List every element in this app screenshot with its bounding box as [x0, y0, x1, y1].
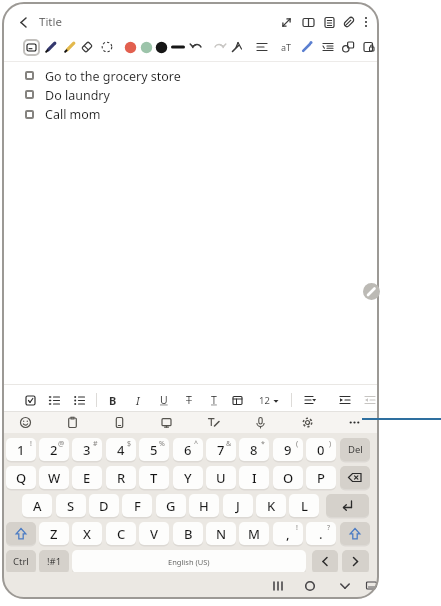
button[interactable] [80, 40, 94, 54]
button[interactable] [44, 40, 58, 54]
button[interactable]: 7 [206, 438, 236, 461]
button[interactable]: S [56, 494, 86, 517]
button[interactable] [66, 416, 79, 429]
button[interactable]: Y [173, 466, 203, 489]
button[interactable] [113, 416, 126, 429]
button[interactable]: B [106, 392, 120, 408]
button[interactable] [25, 90, 34, 99]
button[interactable] [190, 40, 204, 54]
button[interactable]: C [106, 522, 136, 545]
button[interactable] [312, 550, 338, 573]
button[interactable]: Call mom [45, 105, 265, 123]
button[interactable] [255, 40, 269, 54]
button[interactable]: W [39, 466, 69, 489]
button[interactable]: Z [39, 522, 69, 545]
button[interactable] [73, 394, 86, 407]
button[interactable] [303, 579, 317, 593]
button[interactable]: , [273, 522, 303, 545]
button[interactable]: 5 [139, 438, 169, 461]
button[interactable] [301, 416, 314, 429]
button[interactable] [365, 579, 378, 592]
button[interactable] [323, 16, 336, 29]
button[interactable]: X [72, 522, 102, 545]
button[interactable] [303, 393, 317, 407]
button[interactable]: 0 [306, 438, 336, 461]
button[interactable] [342, 15, 356, 29]
button[interactable] [362, 40, 376, 54]
button[interactable] [100, 40, 114, 54]
button[interactable] [18, 17, 29, 28]
button[interactable] [300, 40, 314, 54]
button[interactable] [348, 416, 361, 429]
button[interactable]: B [173, 522, 203, 545]
button[interactable]: E [72, 466, 102, 489]
button[interactable] [363, 283, 380, 300]
button[interactable] [171, 40, 185, 54]
button[interactable] [207, 416, 220, 429]
button[interactable] [25, 110, 34, 119]
button[interactable]: A [22, 494, 52, 517]
button[interactable]: 4 [106, 438, 136, 461]
button[interactable]: R [106, 466, 136, 489]
button[interactable]: 2 [39, 438, 69, 461]
button[interactable]: Ctrl [6, 550, 36, 573]
button[interactable] [140, 41, 153, 54]
button[interactable]: U [157, 392, 171, 408]
button[interactable]: 1 [6, 438, 36, 461]
button[interactable]: O [273, 466, 303, 489]
button[interactable] [19, 416, 32, 429]
button[interactable] [231, 394, 244, 407]
button[interactable]: I [239, 466, 269, 489]
button[interactable]: Q [6, 466, 36, 489]
button[interactable]: N [206, 522, 236, 545]
button[interactable] [230, 40, 244, 54]
button[interactable]: T [139, 466, 169, 489]
button[interactable] [338, 393, 352, 407]
button[interactable] [326, 494, 369, 517]
button[interactable] [273, 398, 279, 404]
button[interactable] [23, 39, 40, 56]
button[interactable]: P [306, 466, 336, 489]
button[interactable]: aT [278, 40, 294, 54]
button[interactable] [340, 466, 370, 489]
button[interactable] [254, 416, 267, 429]
button[interactable]: . [306, 522, 336, 545]
button[interactable]: L [289, 494, 319, 517]
button[interactable]: 8 [239, 438, 269, 461]
button[interactable]: V [139, 522, 169, 545]
button[interactable] [360, 16, 372, 28]
button[interactable]: J [223, 494, 253, 517]
button[interactable]: Del [340, 438, 370, 461]
button[interactable]: H [189, 494, 219, 517]
button[interactable] [124, 41, 137, 54]
button[interactable] [160, 416, 173, 429]
button[interactable]: 3 [72, 438, 102, 461]
button[interactable]: K [256, 494, 286, 517]
button[interactable] [363, 393, 377, 407]
button[interactable] [341, 40, 355, 54]
button[interactable] [6, 522, 36, 545]
button[interactable]: U [206, 466, 236, 489]
button[interactable]: English (US) [72, 550, 306, 573]
button[interactable]: 9 [273, 438, 303, 461]
button[interactable] [271, 579, 285, 593]
button[interactable] [212, 40, 226, 54]
button[interactable]: 12 [254, 392, 274, 408]
button[interactable] [342, 550, 369, 573]
button[interactable]: T [182, 392, 196, 408]
button[interactable] [338, 579, 352, 593]
button[interactable]: T [207, 392, 221, 408]
button[interactable]: G [156, 494, 186, 517]
button[interactable]: 6 [173, 438, 203, 461]
button[interactable] [302, 16, 315, 29]
button[interactable] [155, 41, 168, 54]
button[interactable]: Do laundry [45, 86, 265, 104]
button[interactable]: !#1 [39, 550, 69, 573]
button[interactable] [340, 522, 370, 545]
button[interactable]: M [239, 522, 269, 545]
button[interactable] [63, 40, 77, 54]
button[interactable]: F [122, 494, 152, 517]
button[interactable]: Title [30, 14, 70, 30]
button[interactable] [280, 16, 293, 29]
button[interactable] [48, 394, 61, 407]
